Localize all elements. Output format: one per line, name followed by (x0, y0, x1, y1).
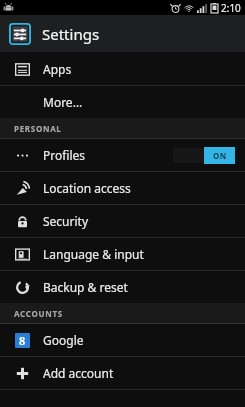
staticText: Location access (43, 180, 131, 196)
staticText: Settings (42, 24, 100, 44)
button[interactable]: Add account (0, 357, 245, 389)
staticText: Language & input (43, 246, 144, 262)
button[interactable]: More… (0, 86, 245, 118)
button[interactable]: Apps (0, 53, 245, 85)
button[interactable]: Profiles (0, 139, 245, 171)
staticText: Backup & reset (43, 279, 128, 295)
button[interactable]: Profiles on (173, 147, 235, 164)
staticText: 2:10 (221, 1, 241, 15)
button[interactable]: 8 (0, 324, 245, 356)
staticText: ON (213, 150, 227, 161)
staticText: 8 (19, 333, 26, 348)
staticText: Security (43, 213, 89, 229)
staticText: Google (43, 332, 84, 348)
staticText: More… (43, 94, 83, 110)
staticText: ACCOUNTS (14, 308, 63, 319)
button[interactable]: Security (0, 205, 245, 237)
button[interactable]: Backup & reset (0, 271, 245, 303)
staticText: Profiles (43, 147, 86, 163)
button[interactable]: Location access (0, 172, 245, 204)
button[interactable]: Language & input (0, 238, 245, 270)
button[interactable]: Settings (0, 15, 245, 53)
staticText: Apps (43, 61, 72, 77)
staticText: Add account (43, 365, 114, 381)
staticText: PERSONAL (14, 123, 62, 134)
